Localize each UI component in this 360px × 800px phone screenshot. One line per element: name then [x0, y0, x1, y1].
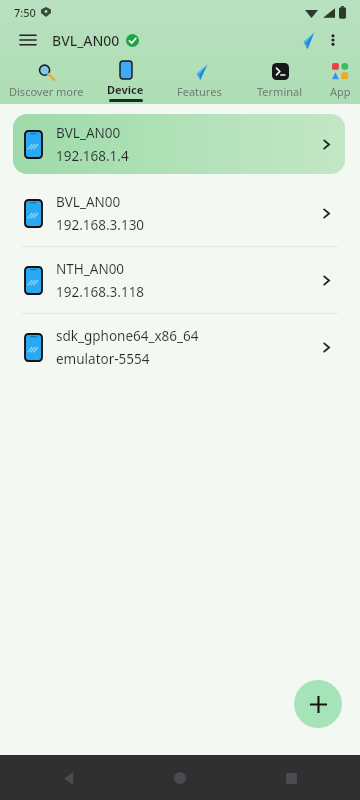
button[interactable]: Home: [167, 765, 193, 791]
staticText: 192.168.3.118: [56, 283, 145, 301]
button[interactable]: NTH_AN00: [0, 247, 360, 313]
button[interactable]: Terminal: [239, 56, 321, 104]
button[interactable]: Menu: [14, 26, 42, 54]
staticText: App: [330, 84, 351, 99]
button[interactable]: BVL_AN00: [0, 180, 360, 246]
button[interactable]: Recents: [278, 765, 304, 791]
staticText: Terminal: [257, 84, 303, 99]
button[interactable]: Navigate: [290, 25, 320, 55]
button[interactable]: More options: [320, 27, 346, 53]
staticText: 192.168.1.4: [56, 147, 129, 165]
button[interactable]: sdk_gphone64_x86_64: [0, 314, 360, 380]
staticText: emulator-5554: [56, 350, 150, 368]
button[interactable]: Back: [56, 765, 82, 791]
button[interactable]: Discover more: [0, 56, 92, 104]
staticText: Features: [177, 84, 222, 99]
staticText: 192.168.3.130: [56, 216, 145, 234]
button[interactable]: Features: [159, 56, 239, 104]
staticText: BVL_AN00: [56, 193, 121, 211]
button[interactable]: Device: [92, 56, 159, 104]
button[interactable]: Add device: [294, 680, 342, 728]
staticText: 7:50: [14, 5, 36, 20]
staticText: BVL_AN00: [52, 31, 120, 50]
staticText: BVL_AN00: [56, 124, 121, 142]
staticText: sdk_gphone64_x86_64: [56, 327, 199, 345]
staticText: NTH_AN00: [56, 260, 125, 278]
button[interactable]: BVL_AN00: [13, 114, 345, 174]
staticText: Device: [107, 82, 144, 97]
staticText: Discover more: [9, 84, 84, 99]
button[interactable]: App: [321, 56, 360, 104]
